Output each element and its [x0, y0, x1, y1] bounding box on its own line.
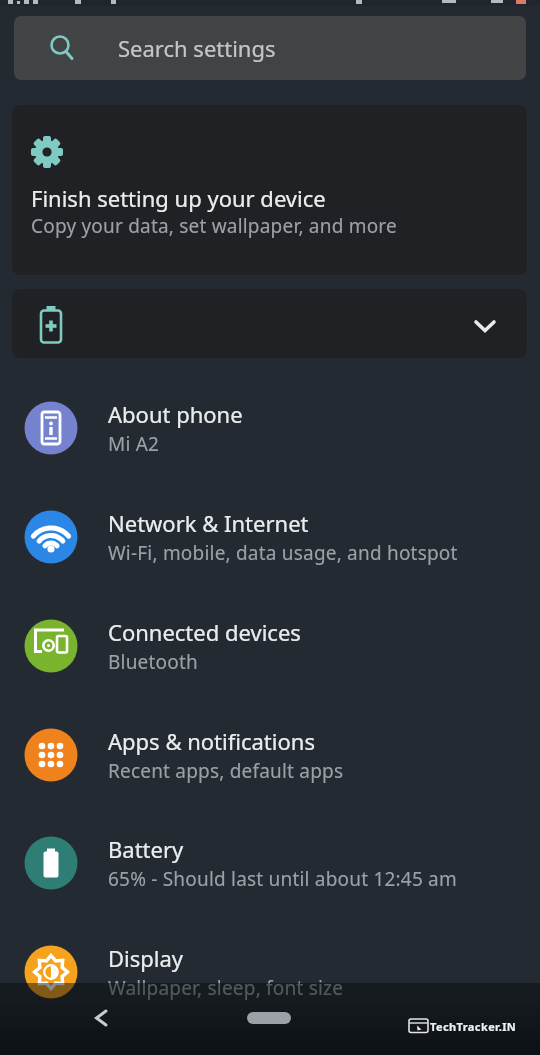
button[interactable]: Search settings [14, 16, 526, 80]
button[interactable] [80, 998, 128, 1038]
staticText: 65% - Should last until about 12:45 am [108, 866, 457, 892]
staticText: TechTracker.IN [430, 1019, 517, 1034]
button[interactable] [12, 289, 527, 358]
button[interactable]: Network & Internet [0, 483, 540, 591]
staticText: Wallpaper, sleep, font size [108, 975, 344, 1001]
staticText: Search settings [118, 33, 276, 63]
staticText: About phone [108, 399, 243, 429]
staticText: Mi A2 [108, 431, 160, 457]
staticText: Apps & notifications [108, 726, 315, 756]
button[interactable]: Battery [0, 809, 540, 917]
staticText: Finish setting up your device [31, 183, 326, 213]
staticText: Connected devices [108, 617, 301, 647]
staticText: Display [108, 943, 184, 973]
button[interactable] [247, 1012, 291, 1024]
staticText: Network & Internet [108, 508, 309, 538]
button[interactable]: Finish setting up your device [12, 105, 527, 275]
staticText: Copy your data, set wallpaper, and more [31, 213, 397, 239]
button[interactable]: Display [0, 918, 540, 1026]
staticText: Battery [108, 834, 184, 864]
staticText: Recent apps, default apps [108, 758, 344, 784]
button[interactable]: Connected devices [0, 592, 540, 700]
button[interactable]: Apps & notifications [0, 701, 540, 809]
staticText: Wi-Fi, mobile, data usage, and hotspot [108, 540, 458, 566]
staticText: Bluetooth [108, 649, 198, 675]
button[interactable]: About phone [0, 374, 540, 482]
